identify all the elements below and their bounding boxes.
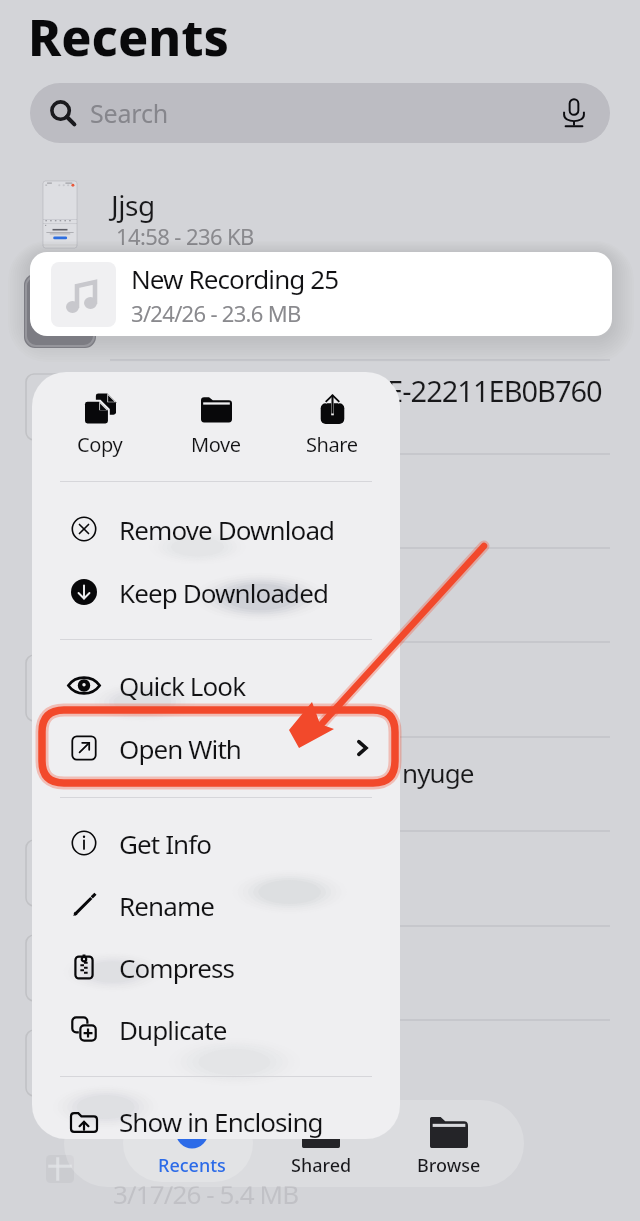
staticText: Show in Enclosing [119, 1104, 323, 1139]
staticText: Open With [119, 731, 242, 766]
button[interactable]: Recents [132, 1117, 252, 1183]
button[interactable]: Share [274, 381, 390, 465]
staticText: Quick Look [119, 668, 246, 703]
button[interactable]: Jjsg preview [43, 181, 77, 248]
button[interactable]: Quick Look [32, 654, 400, 716]
staticText: Browse [417, 1153, 481, 1178]
button[interactable]: Keep Downloaded [32, 561, 400, 623]
staticText: Recents [158, 1153, 226, 1178]
staticText: Search [90, 96, 168, 130]
staticText: Compress [119, 950, 235, 985]
button[interactable]: Voice search [552, 91, 596, 135]
staticText: 14:58 - 236 KB [116, 221, 254, 251]
staticText: Get Info [119, 826, 212, 861]
staticText: New Recording 25 [131, 261, 339, 296]
button[interactable]: Copy [42, 381, 158, 465]
staticText: 3/24/26 - 23.6 MB [131, 298, 301, 328]
button[interactable]: Show in Enclosing [32, 1090, 400, 1139]
staticText: Recents [28, 3, 229, 71]
button[interactable]: Compress [32, 936, 400, 998]
button[interactable]: Duplicate [32, 998, 400, 1060]
staticText: Rename [119, 888, 215, 923]
staticText: EE-22211EB0B760 [372, 371, 602, 410]
staticText: Shared [291, 1153, 352, 1178]
button[interactable]: New Recording 25 [30, 252, 612, 336]
button[interactable]: Shared [261, 1117, 381, 1183]
button[interactable]: Search [30, 83, 610, 143]
staticText: nyuge [402, 755, 474, 790]
staticText: Duplicate [119, 1012, 227, 1047]
staticText: Share [306, 431, 358, 458]
staticText: Remove Download [119, 512, 335, 547]
button[interactable]: Rename [32, 874, 400, 936]
staticText: 3/17/26 - 5.4 MB [113, 1176, 299, 1211]
button[interactable]: Move [158, 381, 274, 465]
button[interactable]: Remove Download [32, 498, 400, 560]
staticText: Move [191, 431, 241, 458]
button[interactable]: Open With [32, 717, 400, 779]
staticText: Copy [77, 431, 123, 458]
button[interactable]: Get Info [32, 812, 400, 874]
button[interactable]: Browse [389, 1117, 509, 1183]
staticText: Keep Downloaded [119, 575, 329, 610]
staticText: Jjsg [111, 186, 155, 224]
